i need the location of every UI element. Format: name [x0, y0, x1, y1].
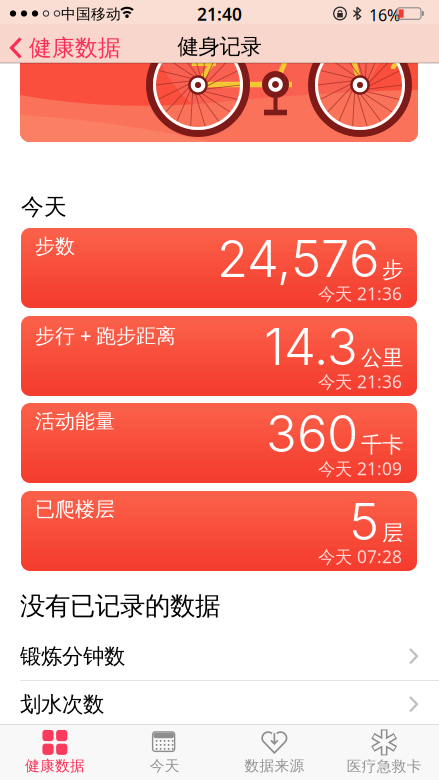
button[interactable]: 健康数据: [0, 725, 110, 779]
staticText: 360: [266, 403, 358, 464]
staticText: 步行 + 跑步距离: [35, 322, 176, 349]
staticText: 已爬楼层: [35, 497, 115, 522]
button[interactable]: 步行 + 跑步距离: [21, 316, 417, 396]
staticText: 医疗急救卡: [347, 757, 422, 775]
staticText: 千卡: [361, 432, 403, 458]
button[interactable]: 数据来源: [219, 725, 329, 779]
staticText: 今天: [21, 193, 67, 221]
staticText: 今天 07:28: [318, 545, 402, 568]
staticText: 数据来源: [244, 757, 304, 775]
staticText: 活动能量: [35, 409, 115, 434]
button[interactable]: 今天: [110, 725, 220, 779]
button[interactable]: 活动能量: [21, 403, 417, 483]
staticText: 今天 21:09: [318, 457, 402, 480]
staticText: 16%: [369, 4, 400, 26]
button[interactable]: 已爬楼层: [21, 491, 417, 571]
staticText: 今天 21:36: [318, 370, 402, 393]
staticText: 21:40: [197, 2, 242, 25]
button[interactable]: 锻炼分钟数: [0, 634, 439, 679]
staticText: 健康数据: [29, 34, 121, 62]
staticText: 健身记录: [177, 33, 261, 60]
staticText: 今天 21:36: [318, 282, 402, 305]
button[interactable]: 健康数据: [10, 34, 121, 62]
button[interactable]: 步数: [21, 228, 417, 308]
staticText: 划水次数: [20, 691, 104, 718]
staticText: 14.3: [264, 316, 358, 377]
staticText: 层: [382, 520, 403, 546]
staticText: 步: [382, 257, 403, 283]
staticText: 今天: [150, 757, 180, 775]
staticText: 5: [349, 491, 379, 552]
staticText: 没有已记录的数据: [20, 590, 220, 622]
staticText: 中国移动: [61, 5, 121, 23]
button[interactable]: 划水次数: [0, 682, 439, 727]
staticText: 步数: [35, 234, 75, 259]
button[interactable]: 医疗急救卡: [329, 725, 439, 779]
staticText: 24,576: [217, 228, 379, 289]
staticText: 公里: [361, 345, 403, 371]
staticText: 健康数据: [25, 757, 85, 775]
staticText: 锻炼分钟数: [20, 643, 125, 670]
